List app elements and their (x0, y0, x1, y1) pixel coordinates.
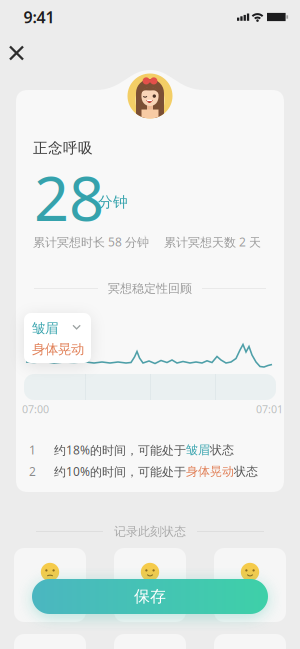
staticText: 皱眉 (32, 320, 58, 336)
staticText: 身体晃动 (186, 464, 234, 479)
staticText: 07:00 (22, 402, 49, 416)
staticText: 2 (29, 463, 36, 479)
staticText: 记录此刻状态 (114, 524, 186, 539)
staticText: 1 (29, 442, 36, 458)
staticText: 皱眉 (186, 443, 210, 457)
staticText: 累计冥想时长 58 分钟 (33, 234, 149, 250)
staticText: 28 (34, 156, 104, 238)
staticText: 9:41 (23, 6, 54, 28)
button[interactable]: 记录心情：平静 (214, 548, 286, 622)
staticText: 累计冥想天数 2 天 (164, 234, 261, 250)
staticText: 身体晃动 (32, 341, 84, 357)
staticText: 分钟 (98, 193, 128, 211)
staticText: 07:01 (256, 402, 283, 416)
staticText: 约10%的时间，可能处于 (54, 463, 186, 479)
staticText: 保存 (134, 587, 166, 606)
staticText: 状态 (234, 464, 258, 479)
staticText: 状态 (210, 443, 234, 457)
button[interactable]: 保存 (32, 579, 268, 614)
button[interactable]: 皱眉 (24, 313, 91, 338)
button[interactable]: 身体晃动 (24, 334, 91, 359)
button[interactable]: Close (6, 42, 27, 63)
button[interactable]: 记录心情：一般 (14, 548, 86, 622)
staticText: 正念呼吸 (33, 139, 93, 157)
button[interactable]: 记录心情：开心 (114, 548, 186, 622)
staticText: 约18%的时间，可能处于 (54, 442, 186, 458)
staticText: 冥想稳定性回顾 (108, 281, 192, 296)
